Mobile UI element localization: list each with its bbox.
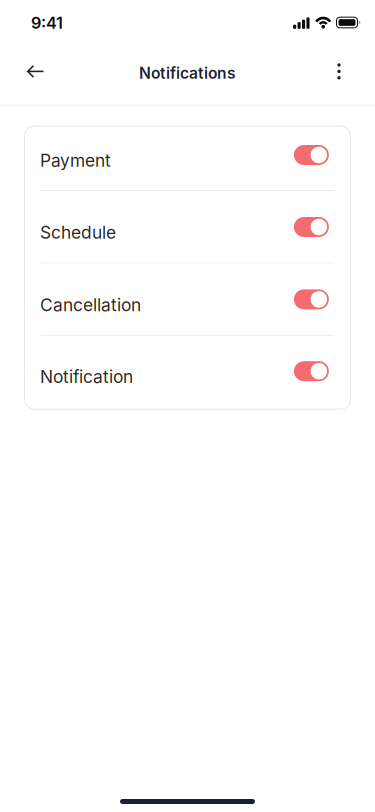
button[interactable]: Back — [13, 49, 57, 93]
staticText: 9:41 — [31, 13, 63, 33]
staticText: Notification — [40, 366, 133, 387]
staticText: Payment — [40, 150, 111, 171]
staticText: Notifications — [139, 64, 236, 82]
button[interactable]: Schedule — [24, 191, 350, 262]
button[interactable]: Payment — [24, 126, 350, 190]
staticText: Schedule — [40, 222, 116, 243]
button[interactable]: More options — [319, 49, 359, 93]
staticText: Cancellation — [40, 294, 141, 315]
button[interactable]: Notification — [24, 336, 350, 409]
button[interactable]: Cancellation — [24, 263, 350, 335]
